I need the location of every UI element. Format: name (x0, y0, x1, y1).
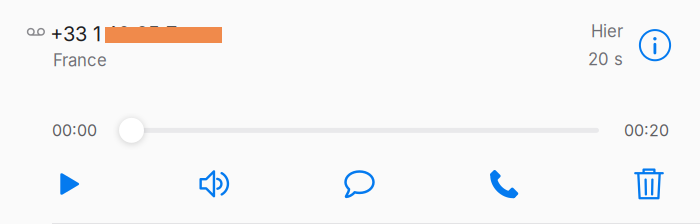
staticText: 00:20 (624, 121, 669, 140)
staticText: 20 s (588, 49, 623, 69)
staticText: Hier (591, 21, 623, 41)
button[interactable]: Appeler (476, 164, 532, 204)
staticText: 00:00 (52, 121, 97, 140)
button[interactable]: Message (331, 164, 387, 204)
staticText: 42 85 7 (105, 22, 177, 46)
staticText: France (53, 50, 107, 70)
button[interactable]: Haut-parleur (187, 164, 243, 204)
button[interactable]: Informations (639, 29, 671, 61)
button[interactable]: Lire (42, 164, 98, 204)
staticText: +33 1 (50, 22, 101, 46)
button[interactable]: Supprimer (621, 164, 677, 204)
